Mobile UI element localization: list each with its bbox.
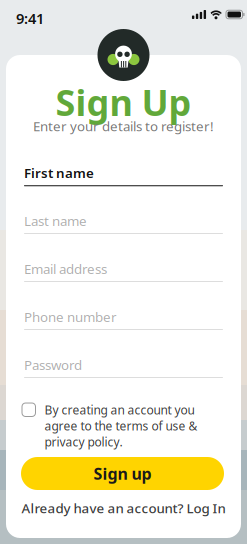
staticText: First name: [24, 164, 94, 182]
staticText: Password: [24, 356, 82, 374]
staticText: Already have an account? Log In: [21, 499, 225, 517]
button[interactable]: Sign up: [21, 457, 224, 490]
button[interactable]: Password: [24, 355, 223, 379]
staticText: By creating an account you agree to the …: [44, 402, 197, 450]
staticText: Sign Up: [55, 78, 191, 126]
button[interactable]: First name: [24, 163, 223, 187]
button[interactable]: Already have an account? Log In: [6, 501, 241, 515]
button[interactable]: Agree to terms of use and privacy policy: [22, 402, 35, 415]
button[interactable]: Phone number: [24, 307, 223, 331]
staticText: Email address: [24, 260, 107, 278]
staticText: Phone number: [24, 308, 117, 326]
button[interactable]: Last name: [24, 211, 223, 235]
staticText: Last name: [24, 212, 87, 230]
staticText: Enter your details to register!: [33, 117, 214, 135]
staticText: 9:41: [16, 8, 44, 28]
staticText: Sign up: [93, 463, 151, 484]
button[interactable]: Email address: [24, 259, 223, 283]
